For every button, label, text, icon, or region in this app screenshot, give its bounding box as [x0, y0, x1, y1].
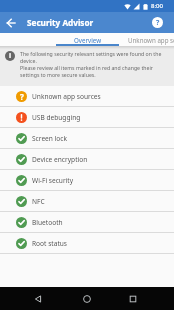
button[interactable]: Screen lock [0, 128, 174, 149]
button[interactable]: USB debugging [0, 107, 174, 128]
staticText: 8:00 [151, 2, 163, 10]
button[interactable]: Device encryption [0, 149, 174, 170]
button[interactable]: Root status [0, 233, 174, 254]
staticText: Security Advisor [27, 17, 94, 28]
button[interactable]: ? [152, 17, 163, 28]
button[interactable]: NFC [0, 191, 174, 212]
button[interactable]: Unknown app sour [128, 36, 174, 44]
button[interactable]: Wi-Fi security [0, 170, 174, 191]
staticText: Screen lock [32, 134, 67, 143]
staticText: ? [156, 18, 160, 28]
staticText: Wi-Fi security [32, 176, 74, 185]
button[interactable] [34, 295, 42, 303]
staticText: The following security relevant settings… [20, 50, 162, 78]
staticText: Root status [32, 239, 68, 248]
button[interactable] [129, 295, 137, 303]
button[interactable]: ? [0, 86, 174, 107]
staticText: Overview [74, 36, 101, 44]
staticText: i [9, 51, 12, 61]
staticText: Unknown app sour [128, 36, 174, 44]
button[interactable]: Bluetooth [0, 212, 174, 233]
staticText: NFC [32, 197, 45, 206]
button[interactable] [4, 16, 18, 30]
staticText: Unknown app sources [32, 92, 101, 101]
staticText: Bluetooth [32, 218, 63, 227]
staticText: Device encryption [32, 155, 88, 164]
button[interactable]: Overview [74, 36, 101, 44]
staticText: USB debugging [32, 113, 81, 122]
button[interactable] [83, 295, 91, 303]
staticText: ? [20, 91, 24, 102]
